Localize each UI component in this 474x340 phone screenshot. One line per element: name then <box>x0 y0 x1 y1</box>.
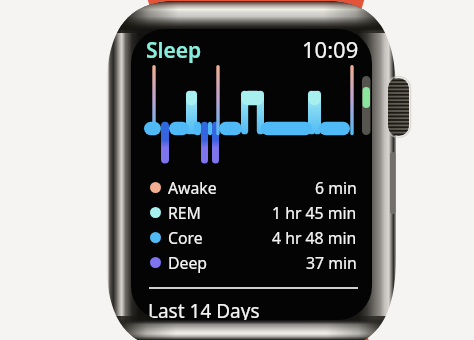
button[interactable]: Sleep <box>146 36 202 65</box>
button[interactable]: REM <box>150 200 357 225</box>
staticText: 4 hr 48 min <box>272 227 357 249</box>
staticText: Last 14 Days <box>148 298 260 320</box>
staticText: Awake <box>168 177 217 199</box>
button[interactable]: Core <box>150 225 357 250</box>
staticText: Deep <box>168 252 208 274</box>
button[interactable]: Awake <box>150 175 357 200</box>
staticText: 10:09 <box>302 34 359 64</box>
staticText: 6 min <box>315 177 357 199</box>
staticText: 37 min <box>306 252 357 274</box>
staticText: 1 hr 45 min <box>272 202 357 224</box>
button[interactable]: Deep <box>150 250 357 275</box>
staticText: Core <box>168 227 203 249</box>
staticText: REM <box>168 202 201 224</box>
staticText: Sleep <box>146 36 202 65</box>
